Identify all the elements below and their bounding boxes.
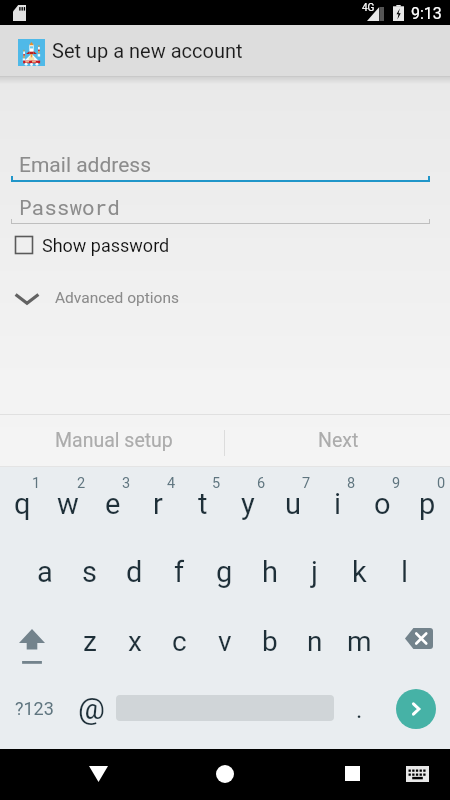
button[interactable]: Home [205, 754, 245, 794]
button[interactable]: h [247, 538, 292, 606]
button[interactable]: s [67, 538, 112, 606]
staticText: d [126, 555, 143, 589]
button[interactable]: 0 [405, 467, 450, 538]
staticText: m [347, 625, 372, 658]
button[interactable]: 4 [135, 467, 180, 538]
button[interactable]: n [292, 606, 337, 676]
button[interactable]: b [247, 606, 292, 676]
button[interactable]: 9 [360, 467, 405, 538]
staticText: a [37, 555, 53, 589]
staticText: q [14, 487, 31, 521]
button[interactable]: z [67, 606, 112, 676]
button[interactable]: a [22, 538, 67, 606]
staticText: 1 [32, 475, 41, 492]
staticText: l [401, 555, 409, 589]
staticText: g [216, 555, 233, 589]
button[interactable]: 6 [225, 467, 270, 538]
staticText: k [352, 555, 367, 589]
button[interactable]: d [112, 538, 157, 606]
staticText: @ [78, 691, 105, 726]
staticText: 0 [437, 475, 446, 492]
staticText: 2 [77, 475, 86, 492]
staticText: Manual setup [55, 429, 173, 452]
button[interactable]: 7 [270, 467, 315, 538]
button[interactable]: g [202, 538, 247, 606]
staticText: y [241, 487, 255, 521]
staticText: 4G [362, 2, 375, 14]
button[interactable]: Enter [396, 689, 436, 729]
staticText: 8 [347, 475, 356, 492]
staticText: Email address [19, 153, 152, 178]
button[interactable]: x [112, 606, 157, 676]
staticText: u [285, 487, 301, 521]
button[interactable]: 3 [90, 467, 135, 538]
staticText: 9 [392, 475, 401, 492]
button[interactable]: v [202, 606, 247, 676]
staticText: Password [19, 193, 120, 221]
button[interactable]: 1 [0, 467, 45, 538]
staticText: 5 [212, 475, 221, 492]
button[interactable]: Back [78, 754, 118, 794]
button[interactable]: Switch keyboard [397, 754, 437, 794]
staticText: w [57, 487, 79, 521]
staticText: 7 [302, 475, 311, 492]
button[interactable]: c [157, 606, 202, 676]
button[interactable]: Advanced options [14, 283, 179, 313]
button[interactable]: m [337, 606, 382, 676]
staticText: s [82, 555, 97, 589]
button[interactable]: 2 [45, 467, 90, 538]
staticText: h [262, 555, 278, 589]
staticText: f [174, 555, 185, 589]
button[interactable]: Next [225, 415, 450, 466]
staticText: b [262, 625, 278, 658]
staticText: j [311, 555, 318, 589]
button[interactable]: Shift [0, 606, 67, 676]
button[interactable]: Manual setup [0, 415, 224, 466]
staticText: e [105, 487, 121, 521]
button[interactable]: @ [68, 676, 114, 749]
staticText: . [356, 696, 363, 724]
button[interactable]: ?123 [0, 676, 68, 749]
button[interactable]: Backspace [382, 606, 450, 676]
staticText: Show password [42, 235, 170, 256]
button[interactable]: . [336, 676, 382, 749]
staticText: t [198, 487, 208, 521]
staticText: 6 [257, 475, 266, 492]
staticText: z [83, 625, 97, 658]
staticText: o [374, 487, 391, 521]
staticText: Advanced options [55, 289, 179, 307]
staticText: Set up a new account [52, 39, 243, 62]
staticText: n [307, 625, 323, 658]
staticText: 4 [167, 475, 176, 492]
button[interactable]: 8 [315, 467, 360, 538]
button[interactable]: f [157, 538, 202, 606]
button[interactable]: l [382, 538, 427, 606]
staticText: Next [318, 429, 359, 452]
staticText: r [153, 487, 163, 521]
staticText: c [172, 625, 187, 658]
button[interactable]: j [292, 538, 337, 606]
staticText: 3 [122, 475, 131, 492]
staticText: v [218, 625, 232, 658]
staticText: 9:13 [411, 4, 442, 23]
staticText: p [419, 487, 436, 521]
button[interactable]: Recent apps [332, 753, 372, 793]
button[interactable]: 5 [180, 467, 225, 538]
button[interactable]: k [337, 538, 382, 606]
staticText: i [334, 487, 342, 521]
button[interactable]: Show password [15, 230, 170, 260]
staticText: x [128, 625, 142, 658]
staticText: ?123 [15, 698, 54, 719]
